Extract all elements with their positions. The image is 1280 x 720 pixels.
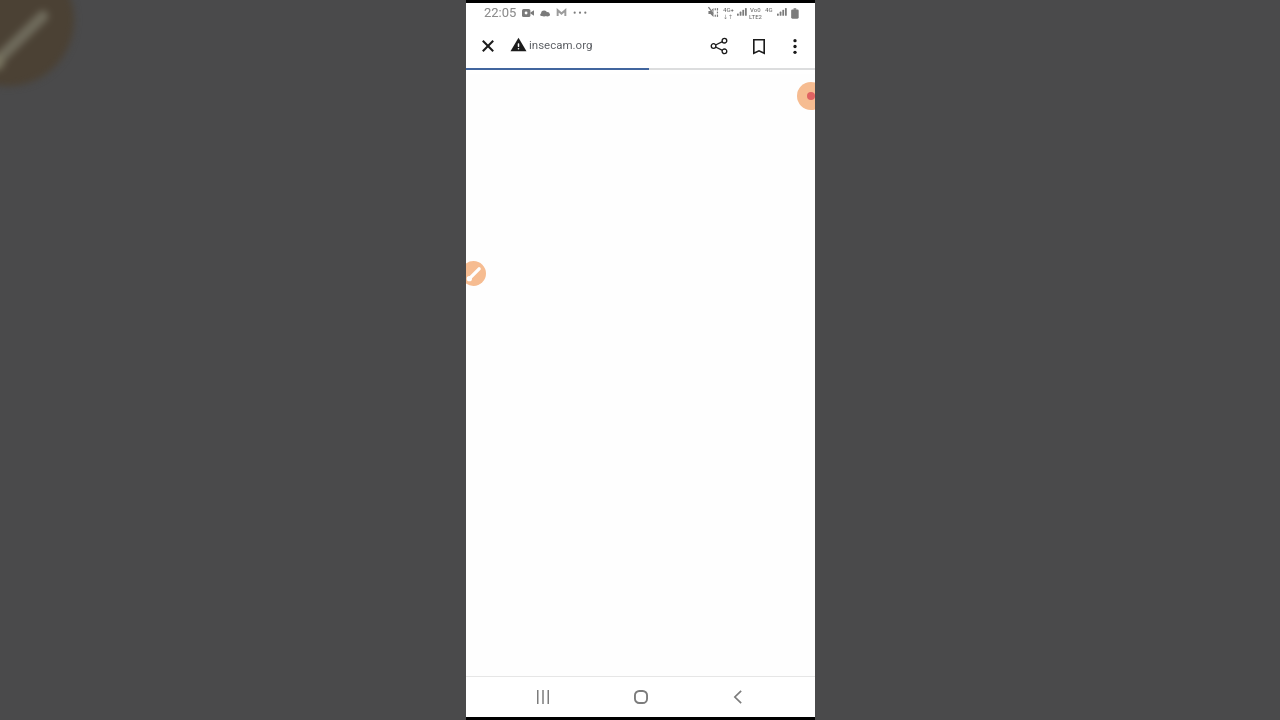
staticText: ↓↑ (723, 13, 734, 19)
button[interactable]: More options (777, 28, 813, 64)
staticText: 4G (765, 6, 773, 13)
button[interactable]: Bookmark (741, 28, 777, 64)
button[interactable]: Share (701, 28, 737, 64)
button[interactable]: insecam.org (510, 27, 593, 63)
staticText: 4G+ (723, 6, 734, 13)
button[interactable]: Recents (523, 677, 563, 717)
staticText: insecam.org (529, 38, 593, 51)
button[interactable]: Close (470, 28, 506, 64)
staticText: LTE2 (749, 13, 762, 19)
staticText: Vo0 (750, 6, 761, 13)
button[interactable]: Home (621, 677, 661, 717)
button[interactable]: Draw (466, 261, 486, 286)
button[interactable]: Record (797, 82, 815, 110)
button[interactable]: Back (718, 677, 758, 717)
staticText: 22:05 (484, 5, 517, 20)
